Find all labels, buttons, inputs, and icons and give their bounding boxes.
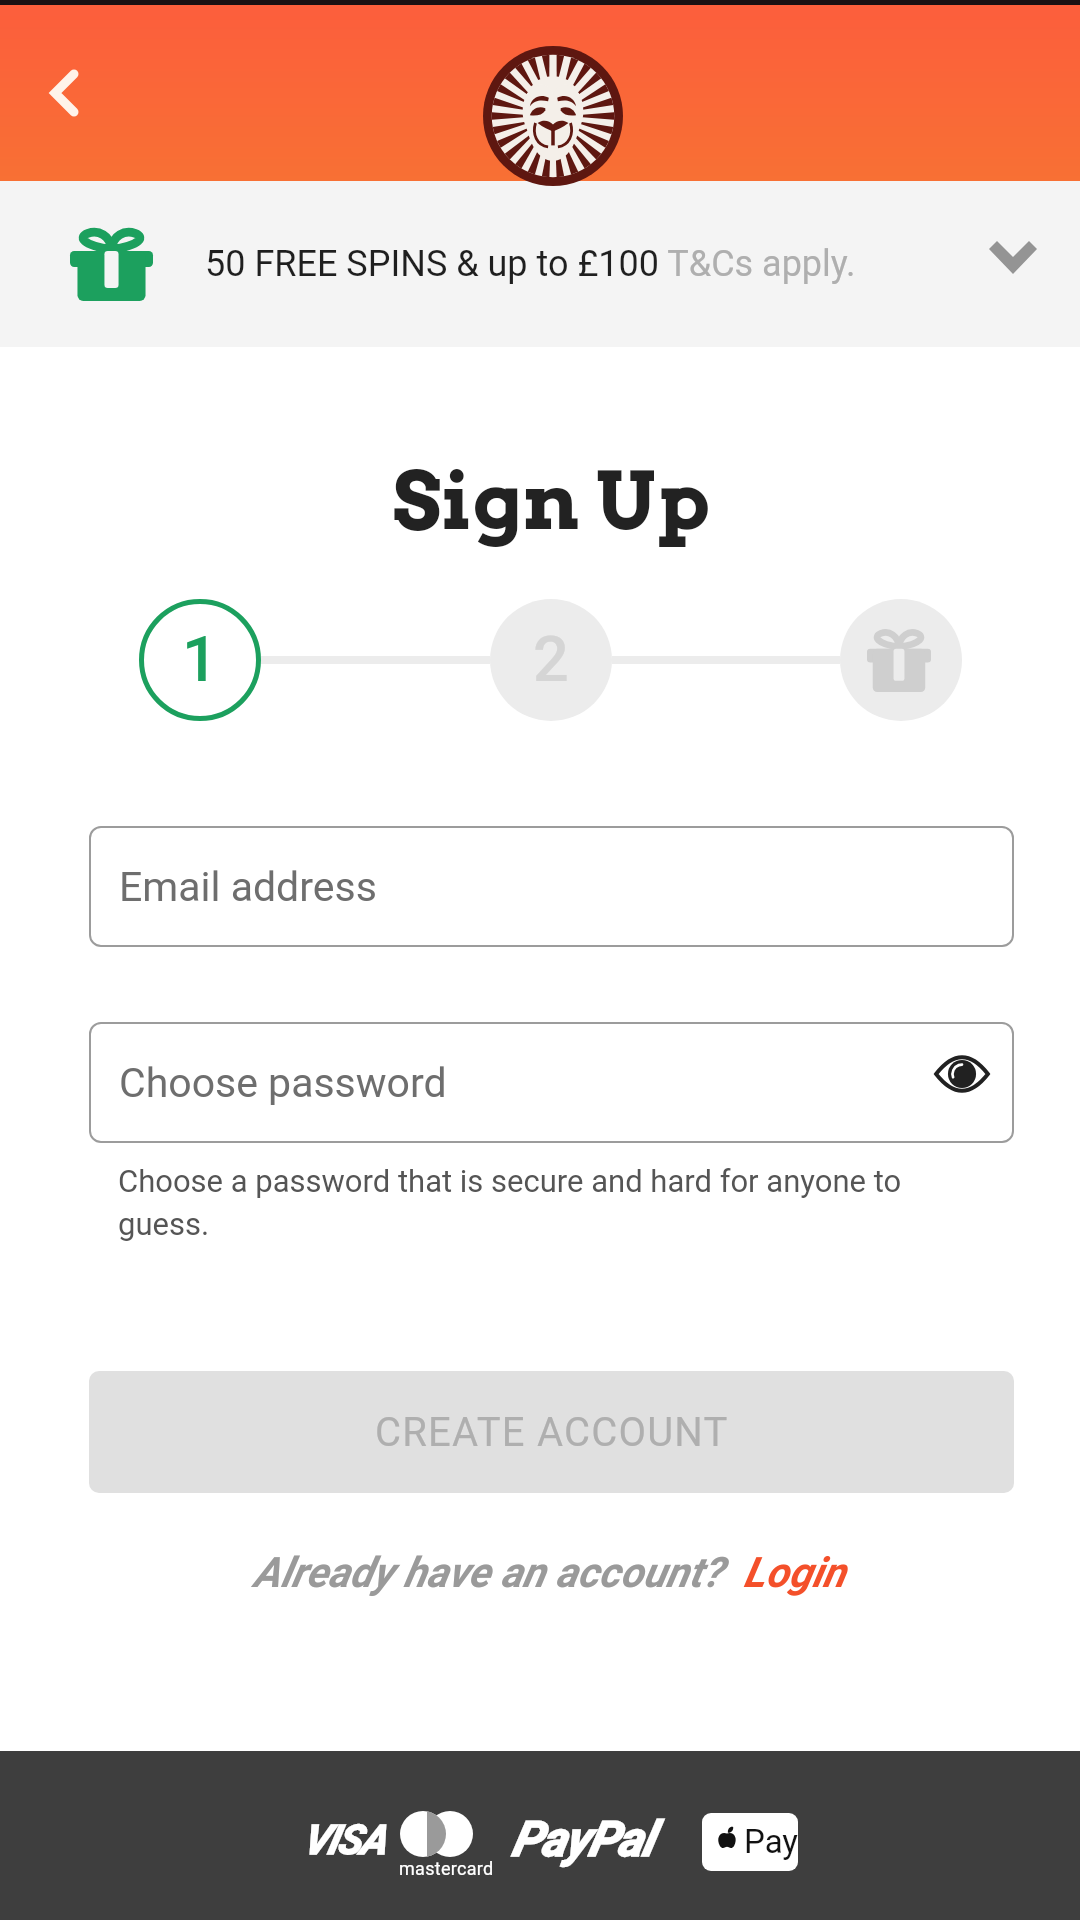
button[interactable]: Show password [935, 1047, 989, 1101]
staticText: Choose a password that is secure and har… [118, 1163, 920, 1243]
button[interactable]: Expand offer details [973, 224, 1053, 304]
staticText: Email address [119, 863, 377, 911]
staticText: VISA [302, 1816, 385, 1864]
staticText: Choose password [119, 1059, 447, 1107]
staticText: 50 FREE SPINS & up to £100 T&Cs apply. [205, 243, 856, 285]
staticText: CREATE ACCOUNT [375, 1409, 729, 1456]
staticText: 2 [533, 623, 569, 697]
button[interactable]: CREATE ACCOUNT [89, 1371, 1014, 1493]
staticText: PayPal [511, 1811, 653, 1868]
button[interactable]: Choose password [89, 1022, 1014, 1143]
staticText: 1 [182, 623, 218, 697]
staticText: mastercard [399, 1858, 494, 1879]
button[interactable]: 50 FREE SPINS & up to £100 T&Cs apply. [0, 181, 1080, 347]
button[interactable]: Back [28, 57, 100, 129]
staticText: Pay [744, 1822, 798, 1861]
staticText: Sign Up [23, 452, 1080, 549]
button[interactable]: Email address [89, 826, 1014, 947]
button[interactable]: Already have an account? Login [19, 1548, 1080, 1597]
staticText: Already have an account? Login [253, 1548, 846, 1597]
